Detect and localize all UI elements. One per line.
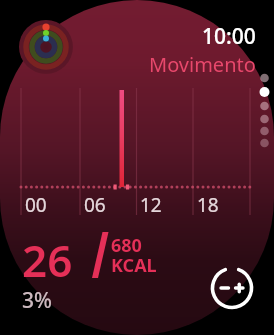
button[interactable]: Adjust goal	[0, 0, 46, 46]
button[interactable]: Activity rings	[0, 0, 56, 56]
